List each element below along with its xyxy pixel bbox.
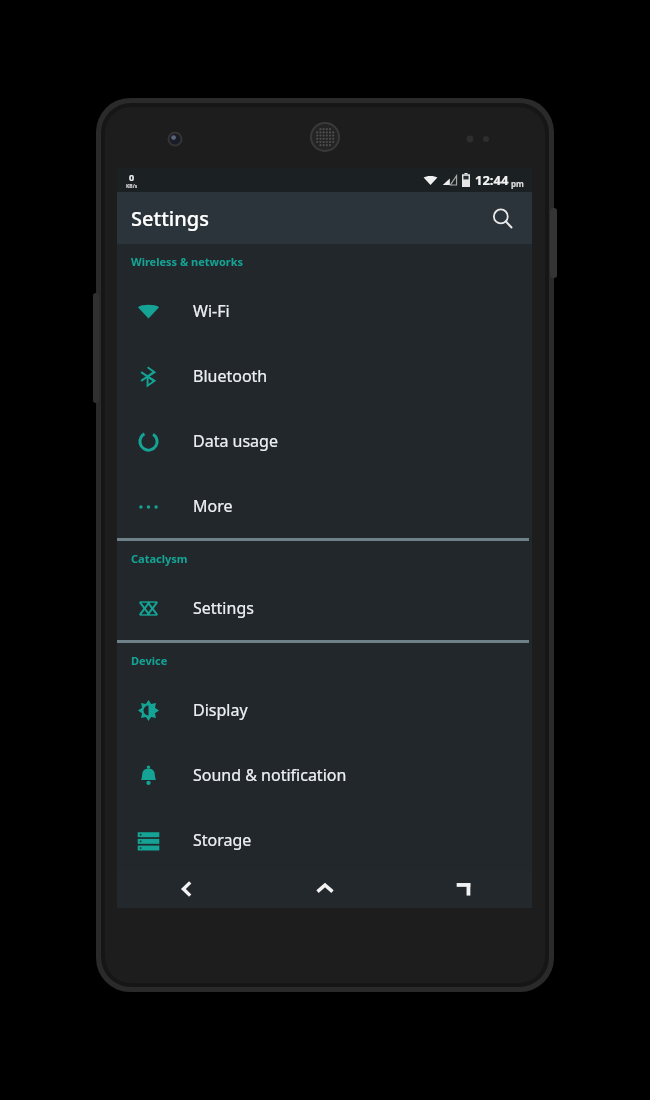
button[interactable]: Search bbox=[480, 196, 524, 240]
staticText: Bluetooth bbox=[193, 365, 268, 387]
staticText: 0 bbox=[129, 171, 135, 183]
staticText: Sound & notification bbox=[193, 764, 347, 786]
button[interactable]: Settings bbox=[117, 575, 532, 640]
staticText: Display bbox=[193, 699, 248, 721]
button[interactable]: Storage bbox=[117, 807, 532, 872]
staticText: Data usage bbox=[193, 430, 278, 452]
staticText: Wireless & networks bbox=[131, 254, 244, 269]
staticText: Settings bbox=[131, 205, 209, 232]
staticText: Device bbox=[131, 653, 168, 668]
staticText: Settings bbox=[193, 597, 254, 619]
staticText: 12:44 bbox=[475, 171, 509, 189]
staticText: KB/s bbox=[126, 183, 138, 190]
button[interactable]: Display bbox=[117, 677, 532, 742]
button[interactable]: Back bbox=[117, 870, 256, 908]
button[interactable]: Home bbox=[256, 870, 394, 908]
staticText: Cataclysm bbox=[131, 551, 188, 566]
staticText: Storage bbox=[193, 829, 252, 851]
button[interactable]: Wi-Fi bbox=[117, 278, 532, 343]
staticText: pm bbox=[511, 178, 524, 189]
button[interactable]: Data usage bbox=[117, 408, 532, 473]
button[interactable]: Recent apps bbox=[394, 870, 532, 908]
button[interactable]: Bluetooth bbox=[117, 343, 532, 408]
staticText: More bbox=[193, 495, 233, 517]
staticText: Wi-Fi bbox=[193, 300, 230, 322]
button[interactable]: Sound & notification bbox=[117, 742, 532, 807]
button[interactable]: More bbox=[117, 473, 532, 538]
